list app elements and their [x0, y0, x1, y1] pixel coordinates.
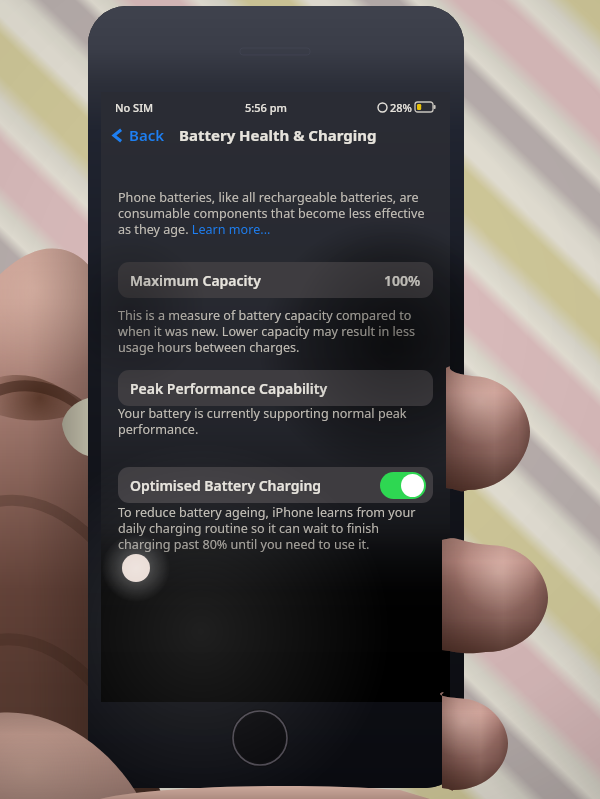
button[interactable]: Optimised Battery Charging toggle — [380, 472, 426, 499]
staticText: 28% — [390, 100, 412, 115]
staticText: Your battery is currently supporting nor… — [118, 405, 433, 438]
staticText: This is a measure of battery capacity co… — [118, 307, 433, 356]
button[interactable]: Peak Performance Capability — [118, 370, 433, 406]
staticText: To reduce battery ageing, iPhone learns … — [118, 504, 433, 553]
staticText: Battery Health & Charging — [179, 125, 377, 145]
staticText: Back — [129, 125, 165, 145]
staticText: 5:56 pm — [245, 100, 287, 115]
button[interactable]: Optimised Battery Charging — [118, 467, 433, 503]
staticText: Phone batteries, like all rechargeable b… — [118, 189, 433, 238]
button[interactable]: Back — [101, 121, 173, 149]
staticText: Peak Performance Capability — [130, 379, 328, 398]
button[interactable]: Home — [231, 709, 289, 767]
staticText: 100% — [384, 271, 421, 290]
staticText: No SIM — [115, 100, 154, 115]
button[interactable]: Maximum Capacity — [118, 262, 433, 298]
staticText: Maximum Capacity — [130, 271, 261, 290]
staticText: Optimised Battery Charging — [130, 476, 322, 495]
